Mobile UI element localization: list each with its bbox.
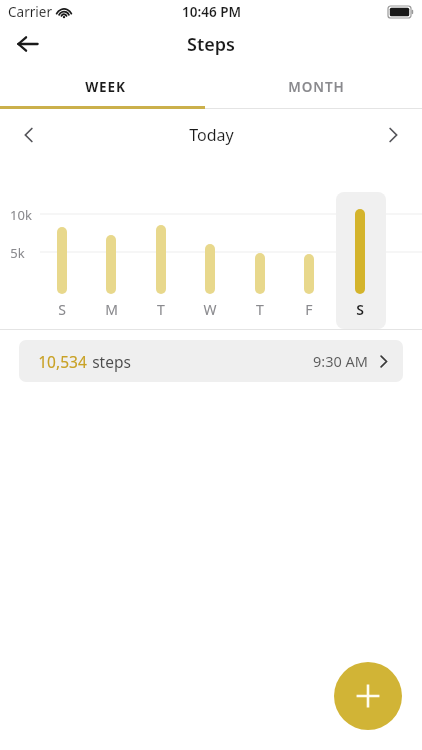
button[interactable]: Next week — [373, 115, 413, 155]
staticText: 9:30 AM — [313, 351, 368, 371]
staticText: T — [256, 300, 264, 319]
staticText: WEEK — [85, 78, 126, 96]
button[interactable]: Add — [334, 662, 402, 730]
button[interactable]: Previous week — [9, 115, 49, 155]
staticText: S — [58, 300, 66, 319]
staticText: 10:46 PM — [182, 3, 241, 21]
staticText: 5k — [10, 244, 25, 262]
button[interactable]: WEEK — [0, 64, 211, 109]
staticText: Carrier — [8, 3, 52, 21]
button[interactable]: MONTH — [211, 64, 422, 109]
staticText: T — [157, 300, 165, 319]
staticText: 10k — [10, 206, 32, 224]
staticText: S — [356, 300, 364, 319]
staticText: Steps — [187, 32, 235, 57]
staticText: W — [203, 300, 217, 319]
button[interactable]: Back — [8, 24, 48, 64]
staticText: MONTH — [288, 78, 345, 96]
staticText: F — [305, 300, 313, 319]
button[interactable]: 10,534 — [19, 340, 403, 382]
staticText: steps — [92, 351, 131, 372]
staticText: 10,534 — [38, 351, 87, 372]
staticText: Today — [189, 124, 234, 146]
staticText: M — [105, 300, 118, 319]
